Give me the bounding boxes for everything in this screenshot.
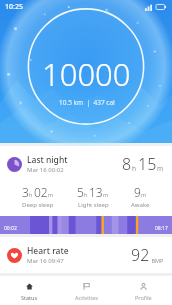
other: Activity (7, 284, 22, 299)
staticText: BMP (150, 257, 164, 264)
staticText: Status (21, 294, 38, 301)
staticText: Mar 16 00:02 (27, 166, 64, 174)
staticText: Deep sleep (22, 201, 54, 209)
staticText: Mar 16 (27, 293, 47, 301)
staticText: Last night (27, 154, 68, 166)
staticText: m (48, 191, 54, 198)
staticText: 8 (122, 153, 132, 175)
staticText: Heart rate (27, 245, 69, 257)
staticText: 13 (89, 184, 103, 200)
staticText: Mar 16 09:47 (27, 257, 64, 265)
button[interactable]: Profile (115, 276, 172, 305)
staticText: 02 (34, 184, 48, 200)
staticText: 9 (134, 184, 141, 200)
staticText: h (84, 191, 89, 198)
staticText: Awake (131, 201, 150, 209)
staticText: h (29, 191, 34, 198)
button[interactable]: Activity (0, 276, 172, 301)
staticText: h (132, 164, 138, 173)
staticText: 10:25 (5, 2, 23, 12)
button[interactable]: Status (0, 276, 58, 305)
button[interactable]: Last night (0, 146, 172, 234)
staticText: 15 (138, 153, 157, 175)
staticText: 10.5 km | 437 cal (59, 98, 115, 107)
staticText: Profile (135, 294, 152, 301)
staticText: Activities (75, 294, 98, 301)
staticText: 10000 (42, 53, 131, 95)
staticText: 00:02 (4, 225, 17, 232)
staticText: 08:17 (155, 225, 168, 232)
staticText: 3 (22, 184, 29, 200)
button[interactable]: Activities (58, 276, 115, 305)
staticText: 5 (77, 184, 84, 200)
staticText: m (103, 191, 109, 198)
staticText: 92 (131, 244, 150, 266)
staticText: Light sleep (78, 201, 109, 209)
staticText: m (141, 191, 147, 198)
button[interactable]: Heart rate (0, 237, 172, 273)
staticText: Activity (27, 281, 57, 293)
staticText: m (157, 164, 164, 173)
other: Heart rate (7, 248, 22, 263)
